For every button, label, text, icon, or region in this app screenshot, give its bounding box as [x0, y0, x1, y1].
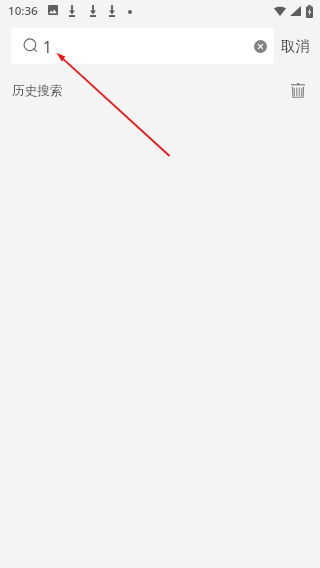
staticText: 10:36: [8, 3, 38, 19]
button[interactable]: Clear search history: [288, 80, 308, 100]
staticText: 1: [43, 36, 52, 57]
button[interactable]: 1: [11, 28, 274, 64]
button[interactable]: 取消: [272, 28, 319, 64]
button[interactable]: Clear text: [249, 28, 272, 64]
staticText: 历史搜索: [12, 83, 63, 99]
staticText: 取消: [281, 37, 310, 55]
